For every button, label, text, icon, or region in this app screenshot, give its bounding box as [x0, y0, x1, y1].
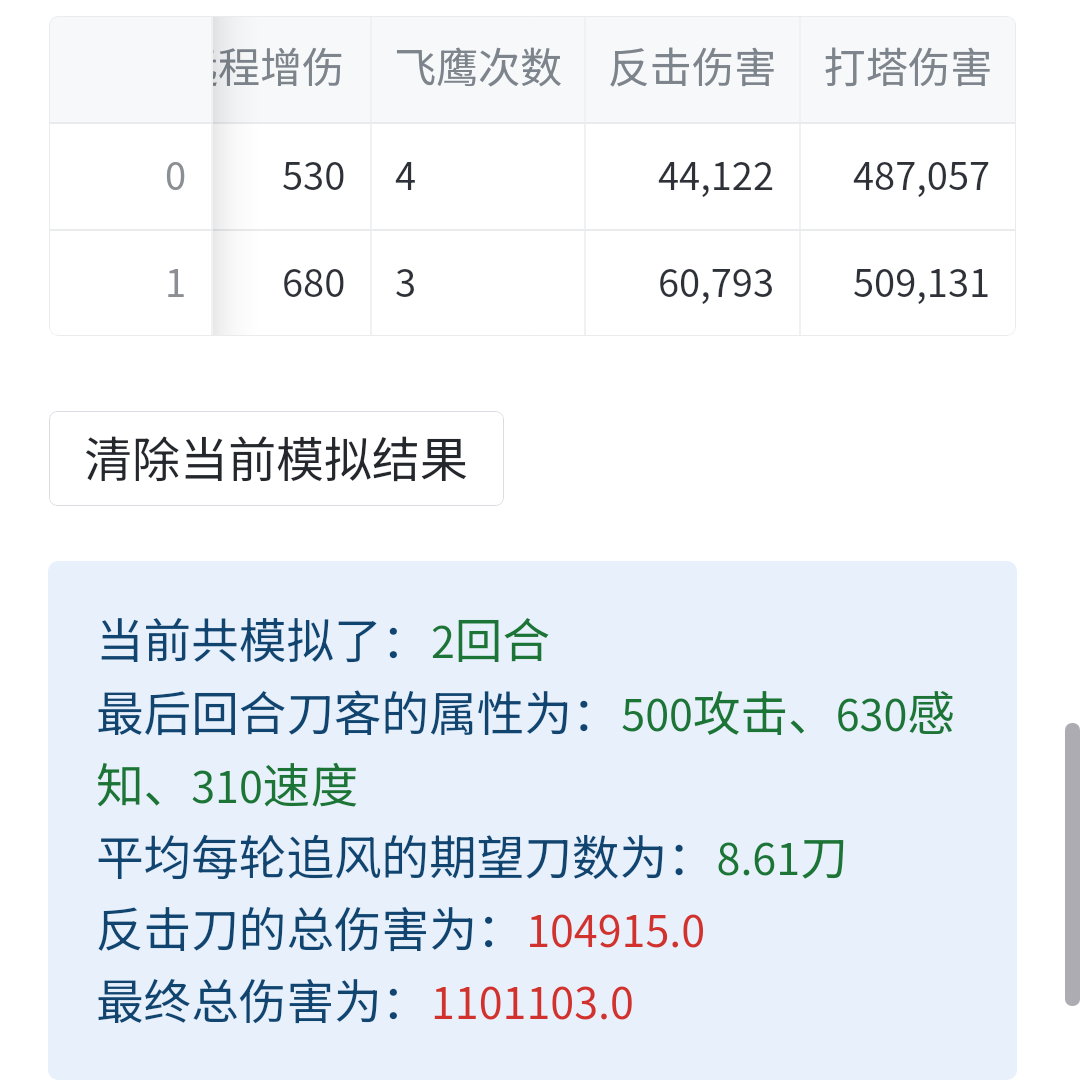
- staticText: 680: [282, 253, 346, 308]
- staticText: 当前共模拟了： 2回合 最后回合刀客的属性为： 500攻击、630感 知、310…: [96, 603, 996, 1032]
- staticText: 509,131: [853, 253, 991, 308]
- staticText: 清除当前模拟结果: [84, 421, 469, 491]
- staticText: 60,793: [658, 253, 775, 308]
- staticText: 飞鹰次数: [394, 34, 563, 95]
- staticText: 44,122: [658, 146, 775, 201]
- staticText: 远程增伤: [212, 34, 345, 95]
- staticText: 530: [282, 146, 346, 201]
- button[interactable]: 清除当前模拟结果: [49, 411, 504, 506]
- staticText: 3: [395, 253, 417, 308]
- staticText: 487,057: [853, 146, 991, 201]
- staticText: 打塔伤害: [824, 34, 993, 95]
- staticText: 反击伤害: [608, 34, 777, 95]
- staticText: 0: [165, 146, 187, 201]
- staticText: 4: [395, 146, 417, 201]
- staticText: 1: [165, 253, 187, 308]
